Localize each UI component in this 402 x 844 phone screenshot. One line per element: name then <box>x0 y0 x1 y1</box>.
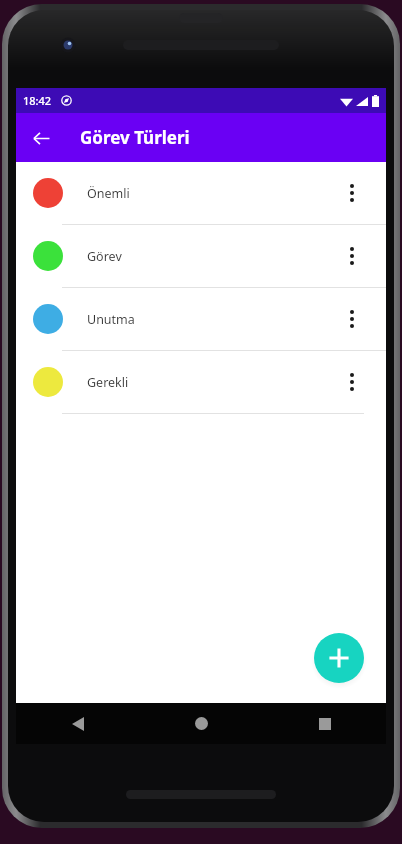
button[interactable]: More options <box>335 233 369 279</box>
button[interactable]: More options <box>335 296 369 342</box>
staticText: Gerekli <box>87 374 335 391</box>
staticText: 18:42 <box>23 93 52 108</box>
button[interactable]: Gerekli <box>16 351 386 413</box>
staticText: Unutma <box>87 311 335 328</box>
button[interactable]: Home <box>140 703 263 744</box>
button[interactable]: Görev <box>16 225 386 287</box>
button[interactable]: Önemli <box>16 162 386 224</box>
button[interactable]: More options <box>335 359 369 405</box>
button[interactable]: Back <box>16 703 140 744</box>
button[interactable]: Unutma <box>16 288 386 350</box>
button[interactable]: Add task type <box>314 633 364 683</box>
staticText: Görev <box>87 248 335 265</box>
button[interactable]: More options <box>335 170 369 216</box>
staticText: Görev Türleri <box>80 126 190 149</box>
button[interactable]: Back <box>28 125 54 151</box>
staticText: Önemli <box>87 185 335 202</box>
button[interactable]: Recent apps <box>263 703 386 744</box>
